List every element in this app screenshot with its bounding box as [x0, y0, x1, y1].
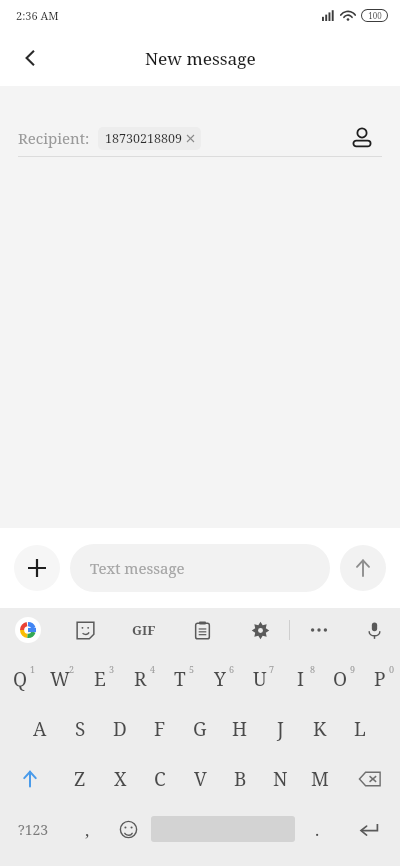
staticText: S: [75, 716, 86, 742]
staticText: 3: [109, 663, 115, 675]
staticText: 1: [30, 663, 36, 675]
staticText: New message: [145, 47, 256, 70]
button[interactable]: Settings: [231, 608, 289, 652]
button[interactable]: K: [300, 704, 340, 754]
staticText: J: [277, 716, 284, 742]
button[interactable]: Back: [6, 34, 54, 82]
staticText: ,: [85, 818, 90, 841]
staticText: GIF: [132, 621, 156, 639]
staticText: ?123: [18, 820, 49, 839]
staticText: R: [134, 666, 147, 692]
button[interactable]: R: [120, 654, 160, 704]
button[interactable]: U: [240, 654, 280, 704]
staticText: 5: [189, 663, 195, 675]
staticText: 9: [350, 663, 356, 675]
button[interactable]: M: [300, 754, 340, 804]
button[interactable]: Backspace: [340, 754, 400, 804]
staticText: X: [114, 766, 127, 792]
staticText: Q: [13, 666, 28, 692]
button[interactable]: ,: [67, 804, 108, 854]
button[interactable]: S: [60, 704, 100, 754]
button[interactable]: P: [360, 654, 400, 704]
staticText: 2:36 AM: [16, 8, 59, 23]
staticText: L: [354, 716, 366, 742]
staticText: G: [193, 716, 207, 742]
staticText: T: [174, 666, 186, 692]
button[interactable]: ?123: [0, 804, 67, 854]
staticText: P: [374, 666, 386, 692]
button[interactable]: Voice input: [348, 608, 400, 652]
button[interactable]: H: [220, 704, 260, 754]
staticText: 100: [368, 10, 382, 21]
button[interactable]: Add attachment: [14, 545, 60, 591]
staticText: B: [234, 766, 247, 792]
staticText: D: [113, 716, 127, 742]
staticText: Recipient:: [18, 128, 90, 148]
button[interactable]: V: [180, 754, 220, 804]
button[interactable]: Enter: [338, 804, 400, 854]
button[interactable]: D: [100, 704, 140, 754]
staticText: 6: [229, 663, 235, 675]
staticText: Z: [74, 766, 86, 792]
staticText: A: [33, 716, 47, 742]
button[interactable]: .: [297, 804, 338, 854]
button[interactable]: 18730218809: [98, 127, 201, 150]
staticText: E: [94, 666, 106, 692]
button[interactable]: Emoji: [108, 804, 149, 854]
staticText: 8: [310, 663, 316, 675]
button[interactable]: E: [80, 654, 120, 704]
button[interactable]: B: [220, 754, 260, 804]
button[interactable]: N: [260, 754, 300, 804]
staticText: 2: [69, 663, 75, 675]
button[interactable]: L: [340, 704, 380, 754]
button[interactable]: O: [320, 654, 360, 704]
button[interactable]: A: [20, 704, 60, 754]
staticText: F: [154, 716, 166, 742]
staticText: O: [333, 666, 348, 692]
button[interactable]: Y: [200, 654, 240, 704]
staticText: 7: [269, 663, 275, 675]
staticText: I: [297, 666, 304, 692]
staticText: W: [50, 666, 70, 692]
staticText: Text message: [90, 558, 185, 578]
button[interactable]: Shift: [0, 754, 60, 804]
staticText: M: [311, 766, 329, 792]
staticText: H: [232, 716, 248, 742]
button[interactable]: GIF: [115, 608, 173, 652]
staticText: N: [273, 766, 288, 792]
button[interactable]: Z: [60, 754, 100, 804]
staticText: 4: [150, 663, 156, 675]
button[interactable]: I: [280, 654, 320, 704]
staticText: V: [194, 766, 207, 792]
button[interactable]: W: [40, 654, 80, 704]
button[interactable]: Choose contact: [342, 120, 382, 156]
staticText: 0: [389, 663, 395, 675]
button[interactable]: Q: [0, 654, 40, 704]
button[interactable]: Clipboard: [173, 608, 231, 652]
button[interactable]: G: [180, 704, 220, 754]
button[interactable]: Google: [0, 608, 56, 652]
staticText: C: [154, 766, 166, 792]
staticText: U: [253, 666, 267, 692]
staticText: Y: [214, 666, 226, 692]
staticText: 18730218809: [105, 130, 182, 147]
button[interactable]: T: [160, 654, 200, 704]
button[interactable]: More options: [290, 608, 348, 652]
staticText: .: [315, 818, 320, 841]
button[interactable]: Stickers: [56, 608, 115, 652]
staticText: K: [313, 716, 327, 742]
button[interactable]: Text message: [70, 544, 330, 592]
button[interactable]: C: [140, 754, 180, 804]
button[interactable]: X: [100, 754, 140, 804]
button[interactable]: J: [260, 704, 300, 754]
button[interactable]: F: [140, 704, 180, 754]
button[interactable]: Send: [340, 545, 386, 591]
